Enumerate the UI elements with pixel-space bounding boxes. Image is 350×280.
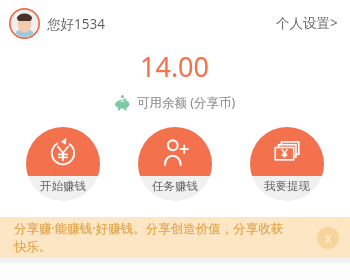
button[interactable]: 我要提现	[250, 127, 324, 201]
staticText: 14.00	[140, 48, 210, 85]
button[interactable]: 您好1534	[9, 8, 105, 39]
staticText: 任务赚钱	[152, 179, 198, 193]
staticText: X	[325, 231, 332, 246]
button[interactable]: 个人设置>	[274, 10, 340, 36]
staticText: 我要提现	[264, 179, 310, 193]
button[interactable]: 开始赚钱	[26, 127, 100, 201]
button[interactable]: 关闭横幅	[317, 227, 339, 249]
staticText: 个人设置>	[276, 14, 338, 32]
staticText: 分享赚·能赚钱·好赚钱。分享创造价值，分享收获快乐。	[14, 220, 294, 254]
staticText: 您好1534	[47, 15, 105, 33]
staticText: 可用余额 (分享币)	[137, 94, 236, 111]
button[interactable]: 任务赚钱	[138, 127, 212, 201]
staticText: 开始赚钱	[40, 179, 86, 193]
